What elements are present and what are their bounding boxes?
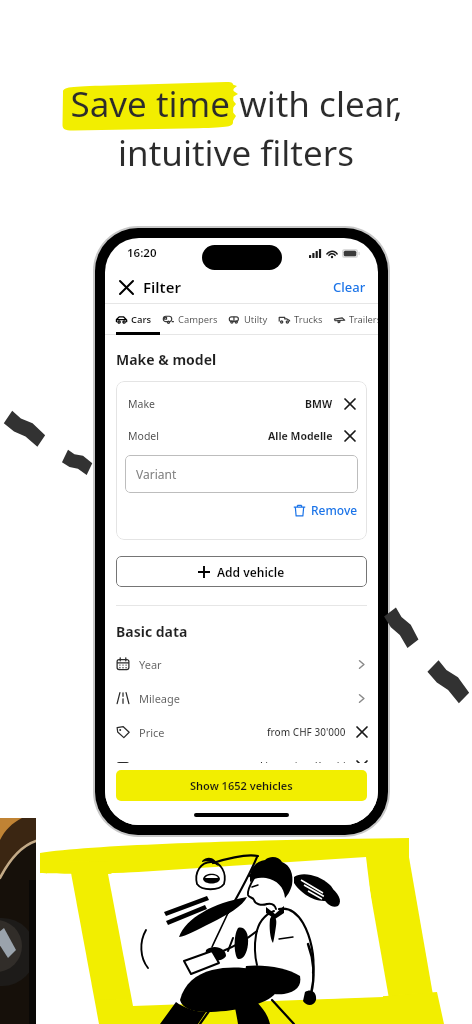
staticText: Make & model (116, 350, 217, 369)
button[interactable]: Campers (163, 304, 218, 335)
staticText: 16:20 (127, 245, 157, 261)
button[interactable]: Year (116, 647, 367, 681)
staticText: Campers (178, 313, 218, 326)
button[interactable]: Close filter (114, 275, 138, 299)
staticText: Make (128, 397, 155, 411)
staticText: Limousine, Kombi (260, 759, 346, 773)
button[interactable]: Make (128, 397, 355, 411)
button[interactable]: Mileage (116, 681, 367, 715)
staticText: Model (128, 429, 159, 443)
staticText: Remove (311, 502, 358, 518)
staticText: Trailers (349, 313, 378, 326)
button[interactable]: Trucks (279, 304, 323, 335)
staticText: Alle Modelle (268, 429, 333, 443)
staticText: Save time with clear, (70, 80, 403, 128)
staticText: Trucks (294, 313, 323, 326)
staticText: Show 1652 vehicles (190, 778, 293, 793)
staticText: Variant (136, 466, 177, 482)
staticText: Filter (143, 277, 181, 297)
staticText: Year (139, 657, 162, 672)
staticText: Utilty (244, 313, 268, 326)
button[interactable]: Trailers (334, 304, 378, 335)
staticText: Mileage (139, 691, 180, 706)
staticText: Add vehicle (217, 564, 285, 580)
button[interactable]: Price (116, 715, 367, 749)
button[interactable]: Show 1652 vehicles (116, 770, 367, 801)
staticText: Cars (131, 313, 152, 326)
staticText: intuitive filters (118, 129, 354, 177)
button[interactable]: Clear (331, 274, 368, 300)
button[interactable]: Add vehicle (116, 556, 367, 587)
staticText: BMW (305, 397, 333, 411)
staticText: Price (139, 725, 165, 740)
staticText: from CHF 30'000 (267, 725, 346, 739)
button[interactable]: Variant (125, 455, 358, 493)
staticText: Basic data (116, 622, 188, 641)
button[interactable]: Body type (116, 749, 367, 783)
button[interactable]: Model (128, 429, 355, 443)
staticText: Body type (139, 759, 191, 774)
staticText: Clear (333, 278, 366, 296)
button[interactable]: Remove (293, 499, 358, 521)
button[interactable]: Cars (116, 304, 152, 335)
button[interactable]: Utilty (229, 304, 268, 335)
